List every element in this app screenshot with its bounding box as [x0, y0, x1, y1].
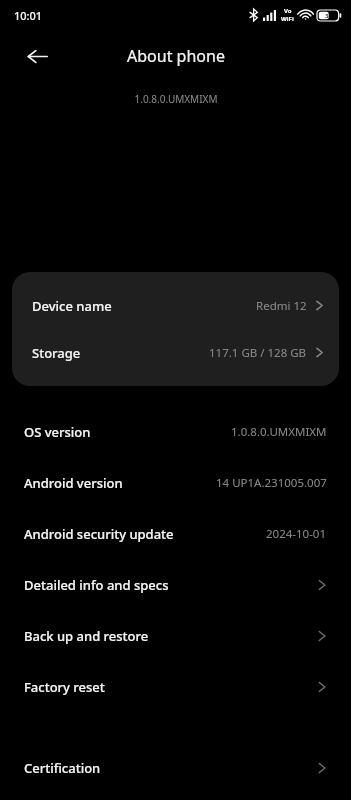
staticText: Back up and restore: [24, 627, 149, 645]
staticText: Vo: [284, 7, 292, 15]
button[interactable]: Certification: [0, 742, 351, 793]
staticText: 38: [325, 12, 332, 20]
button[interactable]: Factory reset: [0, 661, 351, 712]
staticText: 1.0.8.0.UMXMIXM: [231, 424, 327, 440]
button[interactable]: Android security update: [0, 508, 351, 559]
staticText: 117.1 GB / 128 GB: [209, 345, 307, 361]
staticText: Factory reset: [24, 678, 105, 696]
staticText: Storage: [32, 344, 81, 362]
staticText: 14 UP1A.231005.007: [216, 475, 327, 491]
staticText: Detailed info and specs: [24, 576, 169, 594]
staticText: WiFi: [281, 15, 294, 23]
button[interactable]: Back: [16, 35, 58, 77]
button[interactable]: Storage: [12, 329, 339, 376]
staticText: 1.0.8.0.UMXMIXM: [134, 92, 218, 106]
staticText: 2024-10-01: [266, 526, 327, 542]
button[interactable]: Detailed info and specs: [0, 559, 351, 610]
staticText: About phone: [127, 45, 225, 67]
staticText: OS version: [24, 423, 91, 441]
staticText: Device name: [32, 297, 112, 315]
staticText: Redmi 12: [256, 298, 307, 314]
button[interactable]: Android version: [0, 457, 351, 508]
button[interactable]: Device name: [12, 282, 339, 329]
staticText: Android version: [24, 474, 123, 492]
button[interactable]: Back up and restore: [0, 610, 351, 661]
staticText: Android security update: [24, 525, 174, 543]
staticText: 10:01: [14, 8, 43, 23]
button[interactable]: OS version: [0, 406, 351, 457]
staticText: Certification: [24, 759, 101, 777]
